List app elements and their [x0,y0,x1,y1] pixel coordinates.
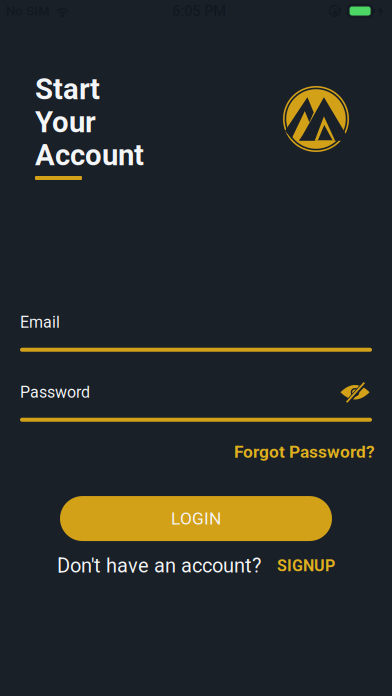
staticText: Password [20,383,90,402]
button[interactable]: Show password [338,381,372,403]
staticText: Account [35,138,144,172]
button[interactable]: LOGIN [60,496,332,541]
staticText: LOGIN [171,508,221,529]
staticText: Don't have an account? [57,554,261,577]
staticText: Forgot Password? [234,442,375,462]
staticText: SIGNUP [277,556,335,575]
staticText: Your [35,105,96,139]
button[interactable]: SIGNUP [277,556,335,575]
staticText: Email [20,313,60,332]
button[interactable]: Forgot Password? [234,442,375,462]
staticText: Start [35,72,100,106]
